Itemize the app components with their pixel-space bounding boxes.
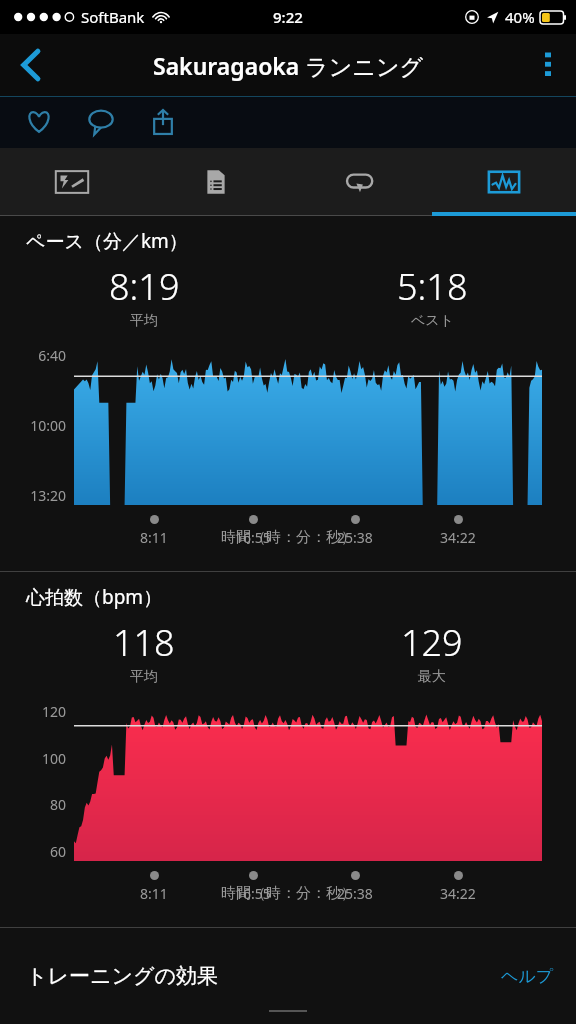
staticText: 34:22 — [440, 528, 476, 547]
staticText: 5:18 — [397, 262, 468, 311]
button[interactable]: Comment — [84, 105, 118, 139]
staticText: 8:11 — [140, 528, 168, 547]
staticText: 最大 — [418, 668, 446, 686]
staticText: 60 — [49, 842, 66, 861]
staticText: 120 — [41, 702, 66, 721]
staticText: 100 — [41, 749, 66, 768]
staticText: SoftBank — [81, 7, 145, 27]
button[interactable]: トレーニングの効果 — [0, 928, 576, 1024]
staticText: ペース（分／km） — [26, 228, 188, 254]
staticText: 25:38 — [337, 528, 373, 547]
button[interactable]: Laps — [288, 148, 432, 216]
staticText: 6:40 — [38, 346, 66, 365]
staticText: 9:22 — [273, 7, 303, 27]
staticText: 13:20 — [30, 486, 66, 505]
staticText: ベスト — [411, 312, 454, 330]
staticText: 平均 — [130, 312, 158, 330]
button[interactable]: Charts — [432, 148, 576, 216]
staticText: ヘルプ — [501, 966, 554, 987]
staticText: 10:00 — [30, 416, 66, 435]
button[interactable]: Details — [144, 148, 288, 216]
button[interactable]: More options — [520, 34, 576, 96]
staticText: 16:55 — [235, 884, 271, 903]
staticText: 34:22 — [440, 884, 476, 903]
staticText: 8:19 — [109, 262, 180, 311]
button[interactable]: Map — [0, 148, 144, 216]
staticText: Sakuragaoka ランニング — [153, 50, 423, 81]
staticText: 時間（時：分：秒） — [221, 884, 356, 903]
button[interactable]: Like — [22, 105, 56, 139]
staticText: 心拍数（bpm） — [26, 584, 163, 610]
staticText: トレーニングの効果 — [26, 963, 218, 989]
button[interactable]: Share — [146, 105, 180, 139]
staticText: 129 — [401, 618, 463, 667]
staticText: 16:55 — [235, 528, 271, 547]
staticText: 時間（時：分：秒） — [221, 528, 356, 547]
staticText: 平均 — [130, 668, 158, 686]
staticText: 8:11 — [140, 884, 168, 903]
button[interactable]: Back — [0, 34, 62, 96]
staticText: 25:38 — [337, 884, 373, 903]
staticText: 80 — [49, 795, 66, 814]
staticText: 40% — [505, 7, 535, 27]
staticText: 118 — [113, 618, 175, 667]
